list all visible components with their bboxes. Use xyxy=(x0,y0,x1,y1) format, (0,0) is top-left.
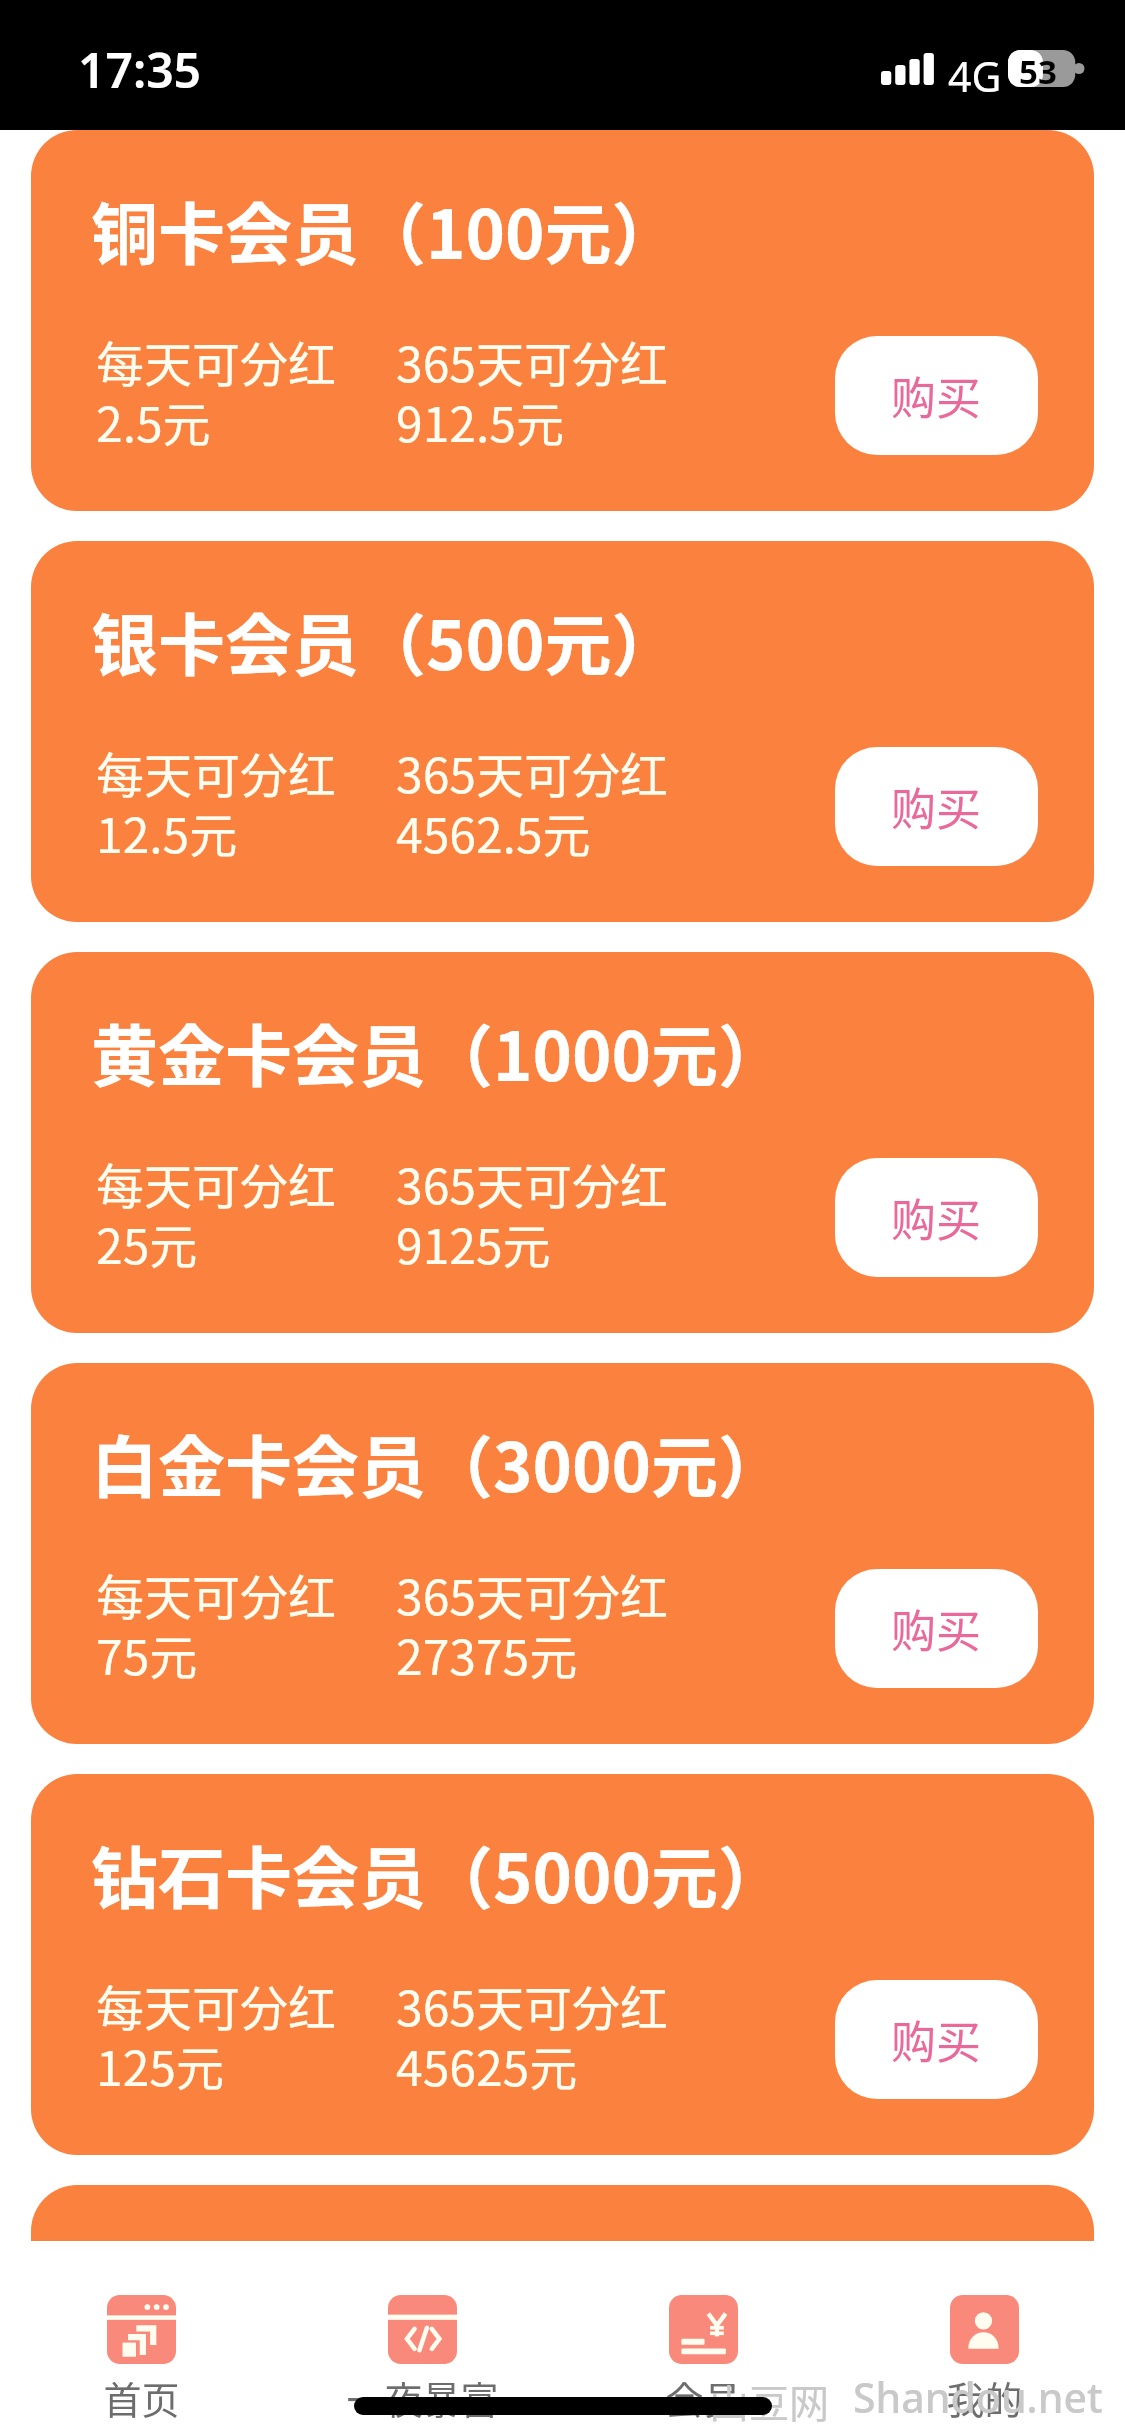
button[interactable]: 购买 xyxy=(835,1980,1038,2099)
staticText: 白金卡会员（3000元） xyxy=(91,1414,786,1511)
staticText: 首页 xyxy=(103,2370,180,2425)
staticText: 25元 xyxy=(96,1208,198,1278)
staticText: 9125元 xyxy=(396,1208,551,1278)
staticText: 银卡会员（500元） xyxy=(91,592,679,689)
staticText: 黄金卡会员（1000元） xyxy=(91,1003,786,1100)
button[interactable]: 一夜暴富 xyxy=(282,2241,563,2425)
button[interactable]: 购买 xyxy=(835,336,1038,455)
staticText: 购买 xyxy=(891,774,982,839)
staticText: 每天可分红 xyxy=(96,1148,337,1218)
button[interactable]: 首页 xyxy=(0,2241,282,2425)
staticText: 4G xyxy=(948,48,1002,104)
staticText: 365天可分红 xyxy=(396,737,668,807)
staticText: 铜卡会员（100元） xyxy=(91,181,679,278)
staticText: 购买 xyxy=(891,2007,982,2072)
staticText: 912.5元 xyxy=(396,386,564,456)
button[interactable]: 购买 xyxy=(835,747,1038,866)
other: 一夜暴富 xyxy=(388,2295,457,2364)
staticText: 17:35 xyxy=(78,37,202,102)
staticText: 每天可分红 xyxy=(96,1559,337,1629)
staticText: 45625元 xyxy=(396,2030,578,2100)
staticText: 购买 xyxy=(891,363,982,428)
staticText: 12.5元 xyxy=(96,797,238,867)
other: 我的 xyxy=(950,2295,1019,2364)
staticText: 钻石卡会员（5000元） xyxy=(91,1825,786,1922)
button[interactable]: 黄金卡会员（1000元） xyxy=(31,952,1094,1333)
button[interactable]: 会员 xyxy=(563,2241,844,2425)
staticText: 125元 xyxy=(96,2030,224,2100)
staticText: 75元 xyxy=(96,1619,198,1689)
staticText: 2.5元 xyxy=(96,386,211,456)
staticText: 会员 xyxy=(665,2370,742,2425)
button[interactable]: 购买 xyxy=(835,1569,1038,1688)
button[interactable]: 钻石卡会员（5000元） xyxy=(31,1774,1094,2155)
staticText: 购买 xyxy=(891,1185,982,1250)
staticText: 4562.5元 xyxy=(396,797,591,867)
staticText: 365天可分红 xyxy=(396,1148,668,1218)
other: 首页 xyxy=(107,2295,176,2364)
button[interactable]: 白金卡会员（3000元） xyxy=(31,1363,1094,1744)
staticText: 53 xyxy=(1019,49,1057,86)
staticText: 山豆网 xyxy=(709,2372,829,2430)
staticText: 365天可分红 xyxy=(396,1970,668,2040)
button[interactable]: 我的 xyxy=(844,2241,1125,2425)
staticText: 购买 xyxy=(891,1596,982,1661)
button[interactable]: 至尊卡会员（10000元） xyxy=(31,2185,1094,2241)
staticText: 365天可分红 xyxy=(396,1559,668,1629)
button[interactable]: 银卡会员（500元） xyxy=(31,541,1094,922)
staticText: 每天可分红 xyxy=(96,1970,337,2040)
other: 会员 xyxy=(669,2295,738,2364)
staticText: 27375元 xyxy=(396,1619,578,1689)
button[interactable]: 购买 xyxy=(835,1158,1038,1277)
staticText: 一夜暴富 xyxy=(346,2370,499,2425)
staticText: Shandou.net xyxy=(853,2369,1103,2425)
staticText: 我的 xyxy=(946,2370,1023,2425)
button[interactable]: 铜卡会员（100元） xyxy=(31,130,1094,511)
staticText: 365天可分红 xyxy=(396,326,668,396)
staticText: 每天可分红 xyxy=(96,737,337,807)
staticText: 每天可分红 xyxy=(96,326,337,396)
